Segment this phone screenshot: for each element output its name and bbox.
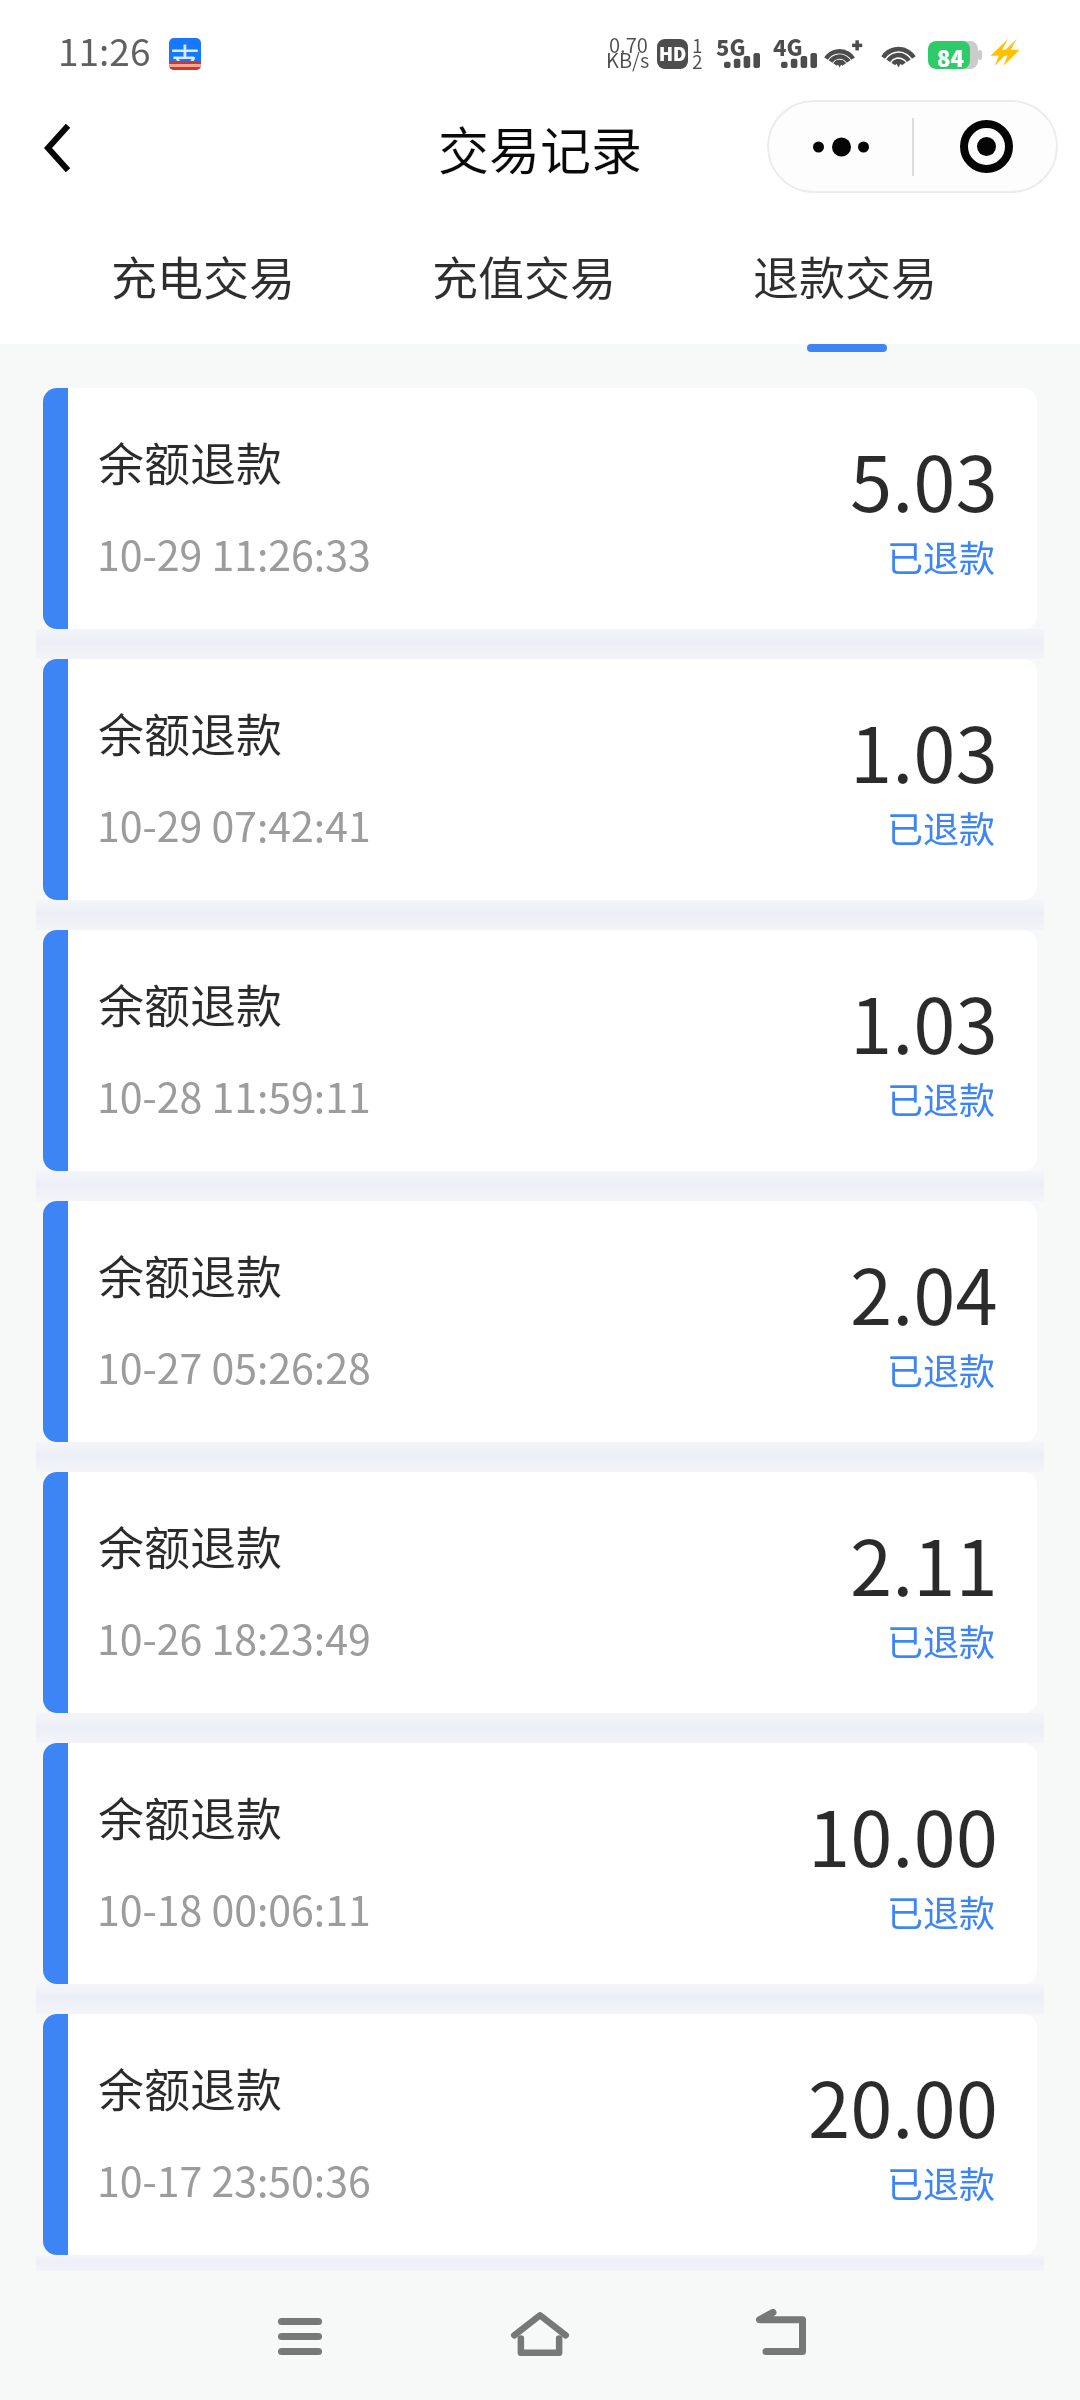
staticText: 1.03 (850, 695, 998, 805)
button[interactable]: Home (480, 2274, 600, 2394)
staticText: 充值交易 (432, 242, 616, 309)
button[interactable]: 充值交易 (384, 220, 664, 330)
staticText: 2 (692, 47, 703, 75)
staticText: 11:26 (58, 23, 151, 77)
staticText: 已退款 (887, 1072, 996, 1124)
staticText: 余额退款 (98, 699, 282, 766)
staticText: 已退款 (887, 1885, 996, 1937)
staticText: 0.70 (609, 30, 648, 59)
staticText: 20.00 (808, 2050, 998, 2160)
staticText: 1 (692, 31, 703, 59)
staticText: 2.11 (850, 1508, 998, 1618)
staticText: 5.03 (850, 424, 998, 534)
staticText: 交易记录 (438, 111, 643, 185)
staticText: 已退款 (887, 1614, 996, 1666)
staticText: 10.00 (808, 1779, 998, 1889)
button[interactable]: Recent apps (240, 2276, 360, 2396)
staticText: 余额退款 (98, 1512, 282, 1579)
button[interactable]: 充电交易 (63, 220, 343, 330)
staticText: KB/s (606, 45, 650, 74)
staticText: 退款交易 (753, 242, 937, 309)
staticText: 10-26 18:23:49 (97, 1607, 371, 1666)
staticText: 10-27 05:26:28 (97, 1336, 371, 1395)
button[interactable]: Close mini program (912, 100, 1058, 193)
staticText: 2.04 (850, 1237, 998, 1347)
staticText: 1.03 (850, 966, 998, 1076)
button[interactable]: 余额退款 (43, 388, 1037, 629)
staticText: 已退款 (887, 2156, 996, 2208)
staticText: 4G (773, 30, 803, 62)
staticText: 余额退款 (98, 970, 282, 1037)
button[interactable]: 余额退款 (43, 930, 1037, 1171)
button[interactable]: 余额退款 (43, 1743, 1037, 1984)
button[interactable]: Back (0, 100, 112, 196)
staticText: 余额退款 (98, 428, 282, 495)
staticText: 10-18 00:06:11 (97, 1878, 371, 1937)
button[interactable]: Back (721, 2273, 841, 2393)
button[interactable]: 退款交易 (705, 220, 985, 330)
staticText: 已退款 (887, 530, 996, 582)
button[interactable]: 余额退款 (43, 2014, 1037, 2255)
staticText: 余额退款 (98, 2054, 282, 2121)
button[interactable]: 余额退款 (43, 1201, 1037, 1442)
staticText: 余额退款 (98, 1783, 282, 1850)
staticText: 10-29 07:42:41 (97, 794, 371, 853)
staticText: 84 (937, 41, 964, 69)
staticText: 10-28 11:59:11 (97, 1065, 371, 1124)
staticText: 10-29 11:26:33 (97, 523, 371, 582)
staticText: 10-17 23:50:36 (97, 2149, 371, 2208)
button[interactable]: 余额退款 (43, 1472, 1037, 1713)
button[interactable]: 余额退款 (43, 659, 1037, 900)
staticText: 已退款 (887, 801, 996, 853)
staticText: 5G (716, 30, 746, 62)
button[interactable]: More options (767, 100, 912, 193)
staticText: HD (659, 40, 687, 66)
staticText: 余额退款 (98, 1241, 282, 1308)
staticText: 支 (170, 38, 200, 67)
staticText: 已退款 (887, 1343, 996, 1395)
staticText: 充电交易 (111, 242, 295, 309)
